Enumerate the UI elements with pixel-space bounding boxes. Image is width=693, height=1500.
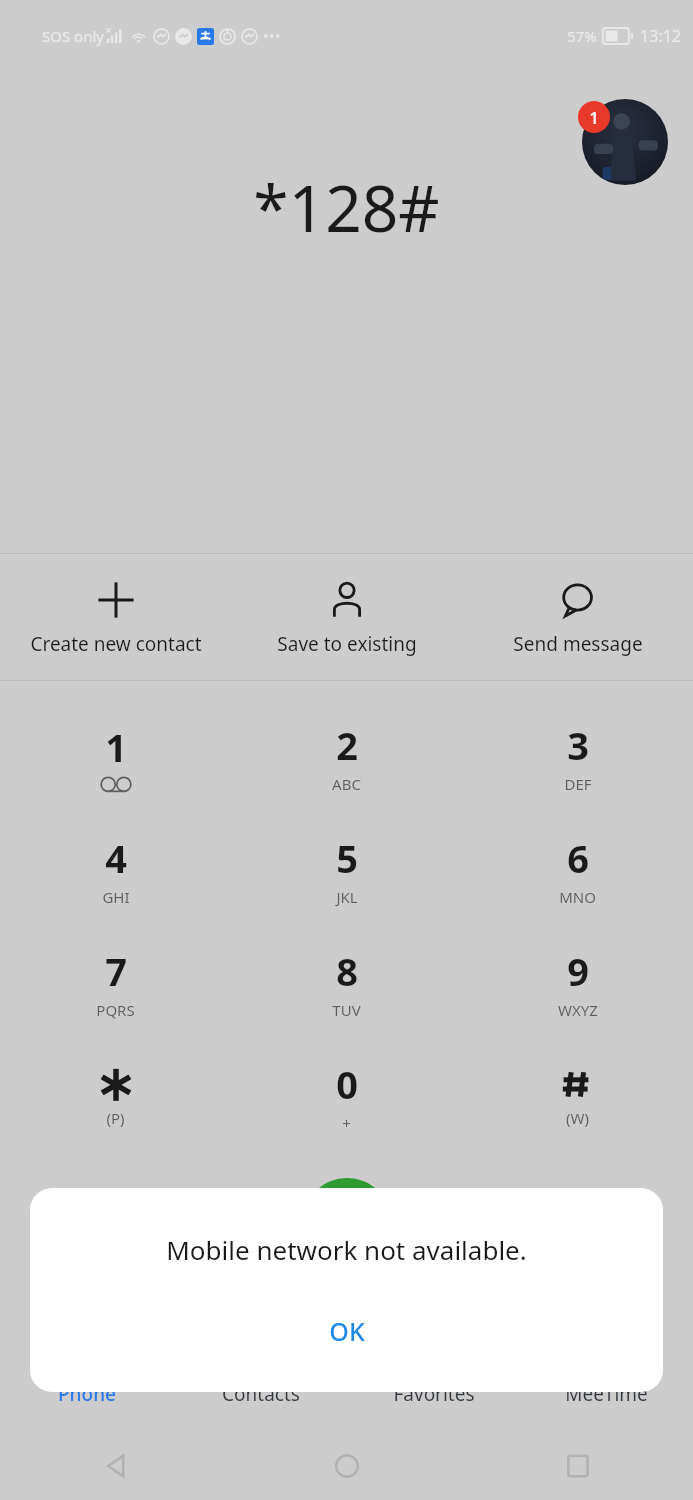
staticText: 4 — [105, 832, 127, 884]
staticText: 9 — [567, 945, 589, 997]
button[interactable]: OK — [247, 1298, 447, 1364]
button[interactable]: Send message — [462, 554, 693, 680]
button[interactable]: Contacts — [174, 1372, 347, 1416]
staticText: 1 — [589, 106, 599, 129]
button[interactable]: 4 — [0, 813, 231, 926]
staticText: WXYZ — [558, 1000, 598, 1020]
button[interactable]: 6 — [462, 813, 693, 926]
staticText: Phone — [58, 1381, 116, 1407]
staticText: MNO — [559, 887, 596, 907]
staticText: MeeTime — [565, 1381, 648, 1407]
staticText: + — [342, 1113, 351, 1133]
staticText: Favorites — [393, 1381, 475, 1407]
staticText: SOS only — [42, 26, 104, 46]
staticText: 1 — [105, 721, 127, 773]
staticText: *128# — [253, 164, 440, 251]
staticText: 7 — [105, 945, 127, 997]
staticText: PQRS — [96, 1000, 135, 1020]
staticText: JKL — [336, 887, 358, 907]
staticText: Send message — [513, 631, 643, 657]
staticText: Create new contact — [30, 631, 202, 657]
button[interactable]: 3 — [462, 700, 693, 813]
button[interactable]: (P) — [0, 1039, 231, 1152]
staticText: Mobile network not available. — [166, 1232, 527, 1267]
button[interactable]: 5 — [231, 813, 462, 926]
staticText: 6 — [567, 832, 589, 884]
staticText: 57% — [567, 26, 597, 46]
button[interactable]: 9 — [462, 926, 693, 1039]
button[interactable]: Profile — [582, 99, 668, 185]
staticText: (W) — [566, 1108, 589, 1128]
staticText: TUV — [332, 1000, 361, 1020]
button[interactable]: Favorites — [347, 1372, 520, 1416]
staticText: 5 — [336, 832, 358, 884]
staticText: Contacts — [222, 1381, 300, 1407]
staticText: OK — [329, 1314, 365, 1348]
staticText: Save to existing — [277, 631, 417, 657]
button[interactable]: (W) — [462, 1039, 693, 1152]
staticText: 0 — [336, 1058, 358, 1110]
staticText: 8 — [336, 945, 358, 997]
staticText: GHI — [102, 887, 130, 907]
button[interactable]: 1 — [0, 700, 231, 813]
button[interactable]: Call — [303, 1178, 391, 1266]
button[interactable]: Create new contact — [0, 554, 231, 680]
button[interactable]: Save to existing — [231, 554, 462, 680]
button[interactable]: 7 — [0, 926, 231, 1039]
button[interactable]: Phone — [0, 1372, 174, 1416]
button[interactable]: 8 — [231, 926, 462, 1039]
button[interactable]: MeeTime — [520, 1372, 693, 1416]
staticText: 2 — [336, 719, 358, 771]
staticText: DEF — [564, 774, 592, 794]
staticText: 3 — [567, 719, 589, 771]
staticText: 13:12 — [640, 25, 681, 47]
staticText: ABC — [332, 774, 361, 794]
staticText: (P) — [106, 1108, 125, 1128]
button[interactable]: 2 — [231, 700, 462, 813]
button[interactable]: 0 — [231, 1039, 462, 1152]
